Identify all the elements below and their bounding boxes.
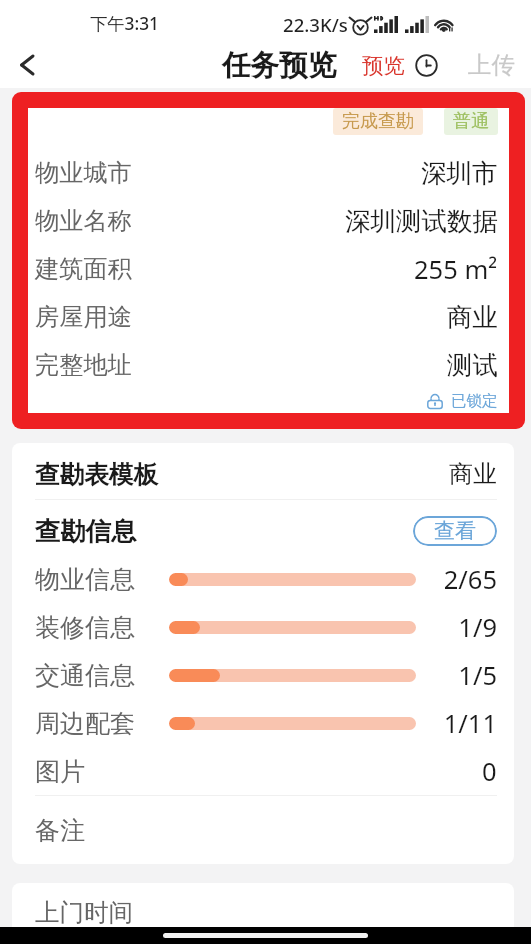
staticText: 深圳测试数据: [345, 205, 498, 237]
staticText: 物业名称: [35, 206, 132, 236]
button[interactable]: History: [415, 54, 438, 77]
staticText: 普通: [453, 110, 489, 133]
staticText: 查看: [434, 518, 476, 544]
staticText: 下午3:31: [90, 12, 159, 36]
staticText: 查勘表模板: [35, 459, 158, 490]
staticText: 房屋用途: [35, 302, 132, 332]
staticText: 查勘信息: [35, 516, 137, 548]
staticText: 预览: [362, 52, 405, 79]
staticText: 图片: [35, 756, 85, 787]
staticText: 任务预览: [222, 47, 337, 83]
button[interactable]: 上传: [468, 50, 515, 80]
staticText: 测试: [447, 349, 498, 381]
staticText: 建筑面积: [35, 254, 132, 284]
staticText: 1/5: [434, 658, 497, 693]
staticText: 上门时间: [35, 897, 133, 928]
staticText: 上传: [468, 50, 515, 80]
staticText: 装修信息: [35, 612, 157, 643]
staticText: 商业: [449, 459, 497, 489]
button[interactable]: Back: [5, 44, 47, 86]
staticText: 商业: [447, 301, 498, 333]
staticText: 交通信息: [35, 660, 157, 691]
button[interactable]: 查看: [413, 516, 497, 546]
staticText: 1/9: [434, 610, 497, 645]
staticText: 2/65: [434, 562, 497, 597]
staticText: 0: [482, 754, 497, 789]
staticText: 物业信息: [35, 564, 157, 595]
button[interactable]: 预览: [362, 52, 405, 79]
staticText: 周边配套: [35, 708, 157, 739]
staticText: 物业城市: [35, 158, 132, 188]
staticText: 深圳市: [421, 157, 498, 189]
staticText: 完成查勘: [342, 110, 414, 133]
staticText: 已锁定: [451, 391, 498, 411]
staticText: 1/11: [434, 706, 497, 741]
staticText: 完整地址: [35, 350, 132, 380]
staticText: 备注: [35, 815, 85, 846]
staticText: 255 m²: [414, 252, 498, 287]
staticText: 22.3K/s: [283, 12, 348, 37]
